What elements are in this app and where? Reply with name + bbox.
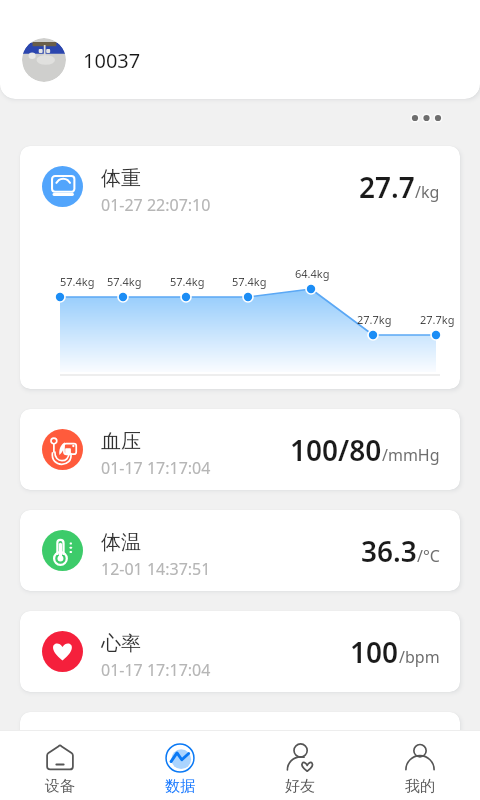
staticText: 100 — [350, 633, 399, 671]
staticText: 36.3 — [361, 532, 417, 570]
staticText: 57.4kg — [107, 274, 142, 289]
staticText: /mmHg — [382, 444, 440, 466]
button[interactable]: 体重 — [20, 146, 460, 389]
button[interactable]: 好友 — [240, 731, 360, 800]
button[interactable]: Profile avatar — [22, 38, 66, 82]
button[interactable]: 设备 — [0, 731, 120, 800]
staticText: /bpm — [399, 646, 440, 668]
staticText: /% — [420, 747, 440, 769]
staticText: 12-01 14:37:51 — [101, 558, 211, 580]
staticText: 设备 — [45, 777, 75, 796]
button[interactable]: 血氧 — [20, 712, 460, 793]
staticText: 57.4kg — [170, 274, 205, 289]
staticText: 体重 — [101, 166, 141, 191]
staticText: 心率 — [101, 631, 141, 656]
staticText: 数据 — [165, 777, 195, 796]
staticText: 57.4kg — [60, 274, 95, 289]
button[interactable]: More options — [410, 106, 454, 130]
staticText: 100/80 — [290, 431, 382, 469]
staticText: 27.7 — [359, 168, 415, 206]
staticText: 57.4kg — [232, 274, 267, 289]
staticText: 98 — [387, 734, 420, 772]
staticText: 01-17 17:17:04 — [101, 659, 211, 681]
staticText: /kg — [415, 181, 440, 203]
staticText: 好友 — [285, 777, 315, 796]
staticText: 体温 — [101, 530, 141, 555]
button[interactable]: 心率 — [20, 611, 460, 692]
staticText: 血压 — [101, 429, 141, 454]
staticText: 27.7kg — [420, 312, 455, 327]
staticText: 27.7kg — [357, 312, 392, 327]
staticText: 10037 — [83, 47, 141, 74]
staticText: 01-27 22:07:10 — [101, 194, 211, 216]
button[interactable]: 血压 — [20, 409, 460, 490]
staticText: 01-17 17:17:04 — [101, 457, 211, 479]
button[interactable]: 我的 — [360, 731, 480, 800]
button[interactable]: 体温 — [20, 510, 460, 591]
staticText: /°C — [417, 545, 440, 567]
staticText: 64.4kg — [295, 266, 330, 281]
button[interactable]: 数据 — [120, 731, 240, 800]
staticText: 我的 — [405, 777, 435, 796]
staticText: 01-17 17:17:04 — [101, 760, 211, 782]
